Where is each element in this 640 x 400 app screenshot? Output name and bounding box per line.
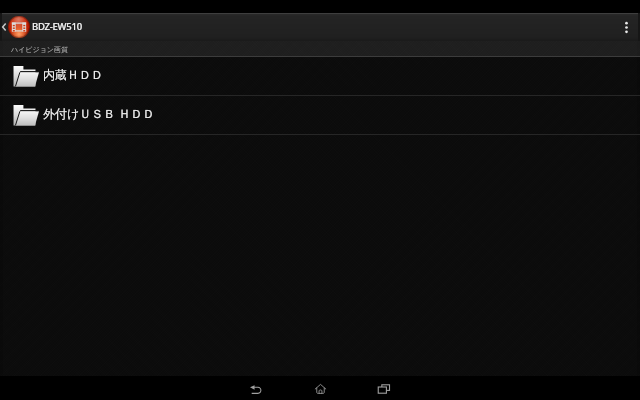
- button[interactable]: Recent apps: [352, 376, 416, 400]
- button[interactable]: More options: [612, 13, 640, 41]
- button[interactable]: 外付けＵＳＢ ＨＤＤ: [0, 96, 640, 135]
- staticText: BDZ-EW510: [32, 20, 82, 33]
- button[interactable]: Home: [288, 376, 352, 400]
- button[interactable]: 内蔵ＨＤＤ: [0, 57, 640, 96]
- button[interactable]: Navigate up: [0, 13, 33, 41]
- staticText: 外付けＵＳＢ ＨＤＤ: [43, 105, 155, 121]
- staticText: 内蔵ＨＤＤ: [43, 67, 103, 82]
- button[interactable]: Back: [224, 376, 288, 400]
- staticText: ハイビジョン画質: [11, 45, 68, 54]
